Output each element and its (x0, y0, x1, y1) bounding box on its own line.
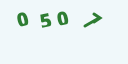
staticText: 0 (54, 4, 70, 26)
staticText: 5 (37, 6, 53, 28)
staticText: 0 (14, 5, 30, 27)
